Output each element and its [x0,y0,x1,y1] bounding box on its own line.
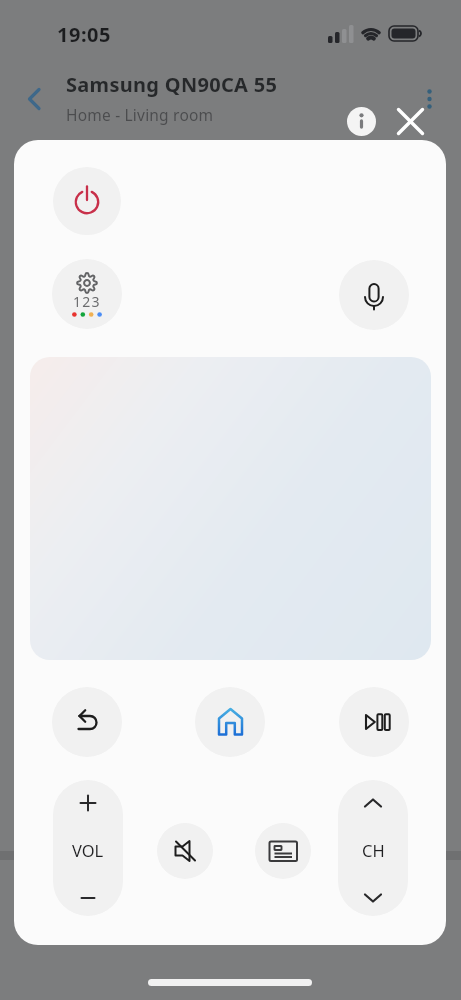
staticText: Samsung QN90CA 55 [66,71,278,98]
button[interactable] [339,260,409,330]
staticText: 123 [73,292,101,311]
button[interactable] [195,687,265,757]
button[interactable]: VOL [53,780,123,916]
button[interactable] [255,823,311,879]
button[interactable] [157,823,213,879]
staticText: Home - Living room [66,104,214,125]
button[interactable] [53,167,121,235]
button[interactable] [394,105,427,138]
button[interactable] [339,687,409,757]
button[interactable]: CH [338,780,408,916]
staticText: CH [362,839,385,861]
staticText: VOL [72,839,104,861]
staticText: 19:05 [57,21,111,48]
button[interactable] [52,687,122,757]
button[interactable]: 123 [52,259,122,329]
button[interactable] [30,357,431,660]
button[interactable] [347,107,376,136]
